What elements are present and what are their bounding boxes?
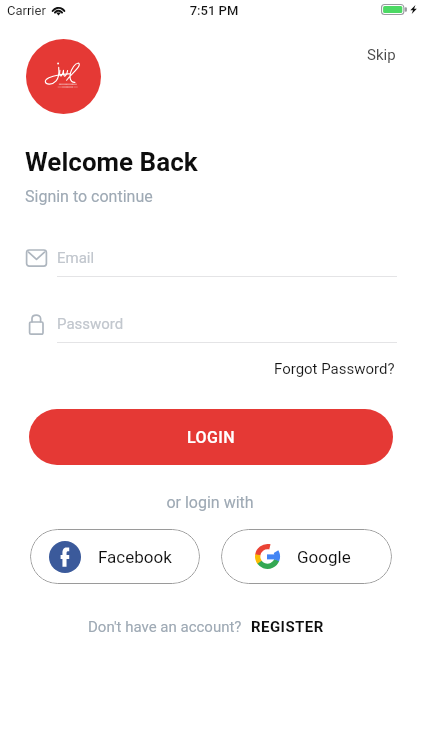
staticText: Signin to continue — [25, 187, 153, 206]
button[interactable]: Google — [221, 529, 392, 584]
staticText: Google — [297, 547, 351, 567]
staticText: Carrier — [7, 3, 46, 18]
button[interactable]: Don't have an account? — [0, 618, 417, 636]
button[interactable]: Facebook — [30, 529, 200, 584]
button[interactable]: Forgot Password? — [264, 352, 405, 386]
staticText: Forgot Password? — [274, 360, 395, 378]
staticText: REGISTER — [251, 618, 324, 636]
staticText: Skip — [367, 46, 396, 64]
staticText: or login with — [0, 493, 421, 512]
button[interactable]: Skip — [355, 40, 408, 70]
staticText: 7:51 PM — [3, 3, 422, 18]
button[interactable]: Password — [26, 308, 397, 344]
staticText: Email — [57, 249, 95, 267]
button[interactable]: Email — [26, 244, 397, 280]
staticText: Password — [57, 315, 124, 333]
staticText: Welcome Back — [25, 147, 198, 177]
button[interactable]: LOGIN — [29, 409, 393, 465]
staticText: Facebook — [98, 547, 172, 567]
staticText: Don't have an account? — [88, 618, 242, 636]
staticText: LOGIN — [187, 428, 235, 447]
